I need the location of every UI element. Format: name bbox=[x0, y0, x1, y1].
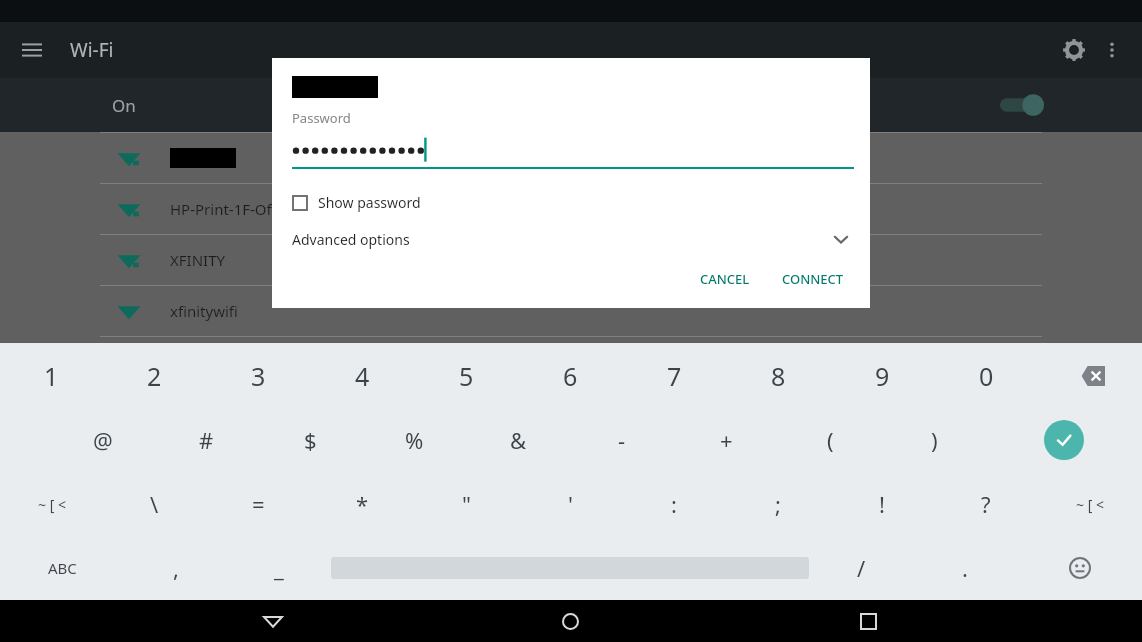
button[interactable]: = bbox=[206, 472, 310, 536]
staticText: ; bbox=[775, 489, 781, 519]
button[interactable]: \ bbox=[103, 472, 206, 536]
button[interactable]: Home bbox=[546, 600, 594, 642]
button[interactable]: Settings bbox=[1054, 30, 1094, 70]
button[interactable]: 4 bbox=[310, 343, 414, 408]
staticText: ) bbox=[931, 425, 938, 455]
staticText: ABC bbox=[48, 558, 77, 578]
staticText: @ bbox=[93, 425, 113, 455]
button[interactable]: Recents bbox=[844, 600, 892, 642]
staticText: # bbox=[199, 425, 214, 455]
button[interactable]: " bbox=[414, 472, 518, 536]
staticText: Password bbox=[292, 109, 351, 127]
button[interactable] bbox=[0, 133, 1142, 183]
staticText: \ bbox=[150, 489, 159, 519]
button[interactable]: More options bbox=[1094, 32, 1130, 68]
button[interactable]: Space bbox=[331, 556, 809, 580]
button[interactable]: Back bbox=[249, 600, 297, 642]
staticText: Show password bbox=[318, 193, 421, 212]
staticText: ~ [ < bbox=[1076, 495, 1104, 514]
staticText: 1 bbox=[44, 359, 59, 393]
button[interactable]: 3 bbox=[206, 343, 310, 408]
button[interactable]: _ bbox=[227, 536, 331, 600]
staticText: 4 bbox=[355, 359, 370, 393]
button[interactable]: : bbox=[622, 472, 726, 536]
button[interactable]: CANCEL bbox=[692, 264, 758, 294]
button[interactable]: 1 bbox=[0, 343, 103, 408]
staticText: Wi-Fi bbox=[70, 37, 114, 63]
button[interactable]: * bbox=[310, 472, 414, 536]
button[interactable]: @ bbox=[51, 408, 154, 472]
button[interactable]: Enter bbox=[986, 408, 1142, 472]
button[interactable]: ~ [ < bbox=[0, 472, 103, 536]
button[interactable]: ( bbox=[778, 408, 882, 472]
staticText: On bbox=[112, 94, 136, 117]
button[interactable]: / bbox=[809, 536, 913, 600]
button[interactable]: HP-Print-1F-Offi bbox=[0, 184, 1142, 234]
staticText: _ bbox=[274, 553, 284, 583]
staticText: , bbox=[173, 553, 179, 583]
staticText: ( bbox=[827, 425, 834, 455]
button[interactable]: $ bbox=[258, 408, 362, 472]
button[interactable]: CONNECT bbox=[774, 264, 852, 294]
button[interactable]: Backspace bbox=[1038, 343, 1142, 408]
button[interactable]: ; bbox=[726, 472, 830, 536]
staticText: 7 bbox=[667, 359, 682, 393]
button[interactable]: XFINITY bbox=[0, 235, 1142, 285]
staticText: $ bbox=[304, 425, 317, 455]
button[interactable]: + bbox=[674, 408, 778, 472]
button[interactable]: % bbox=[362, 408, 466, 472]
staticText: ~ [ < bbox=[38, 495, 66, 514]
staticText: + bbox=[720, 425, 733, 455]
staticText: % bbox=[405, 425, 424, 455]
staticText: & bbox=[510, 425, 527, 455]
staticText: : bbox=[671, 489, 677, 519]
button[interactable]: 9 bbox=[830, 343, 934, 408]
button[interactable] bbox=[1000, 93, 1044, 117]
button[interactable]: Show password bbox=[292, 193, 421, 212]
staticText: ? bbox=[981, 489, 991, 519]
staticText: XFINITY bbox=[170, 250, 225, 270]
button[interactable]: ) bbox=[882, 408, 986, 472]
staticText: = bbox=[252, 489, 265, 519]
staticText: 6 bbox=[563, 359, 578, 393]
button[interactable]: Advanced options bbox=[272, 226, 870, 252]
button[interactable]: ! bbox=[830, 472, 934, 536]
staticText: - bbox=[618, 425, 626, 455]
staticText: HP-Print-1F-Offi bbox=[170, 199, 281, 219]
staticText: " bbox=[462, 489, 471, 519]
button[interactable]: & bbox=[466, 408, 570, 472]
staticText: CONNECT bbox=[782, 270, 844, 288]
button[interactable]: 7 bbox=[622, 343, 726, 408]
button[interactable]: # bbox=[154, 408, 258, 472]
staticText: 5 bbox=[459, 359, 474, 393]
button[interactable]: ABC bbox=[0, 536, 124, 600]
staticText: 9 bbox=[875, 359, 890, 393]
staticText: ' bbox=[568, 489, 573, 519]
button[interactable]: 6 bbox=[518, 343, 622, 408]
button[interactable]: 5 bbox=[414, 343, 518, 408]
staticText: 8 bbox=[771, 359, 786, 393]
button[interactable]: 2 bbox=[103, 343, 206, 408]
staticText: ! bbox=[879, 489, 885, 519]
staticText: / bbox=[857, 553, 866, 583]
button[interactable]: - bbox=[570, 408, 674, 472]
button[interactable]: . bbox=[913, 536, 1017, 600]
button[interactable]: , bbox=[124, 536, 227, 600]
staticText: CANCEL bbox=[700, 270, 750, 288]
staticText: 3 bbox=[251, 359, 266, 393]
staticText: 0 bbox=[979, 359, 994, 393]
button[interactable]: 0 bbox=[934, 343, 1038, 408]
button[interactable]: ' bbox=[518, 472, 622, 536]
button[interactable]: 8 bbox=[726, 343, 830, 408]
button[interactable]: xfinitywifi bbox=[0, 286, 1142, 336]
staticText: * bbox=[356, 489, 369, 519]
staticText: 2 bbox=[147, 359, 162, 393]
button[interactable]: ? bbox=[934, 472, 1038, 536]
button[interactable]: Menu bbox=[18, 36, 46, 64]
staticText: . bbox=[962, 553, 968, 583]
staticText: Advanced options bbox=[292, 230, 410, 249]
button[interactable]: Emoji bbox=[1017, 536, 1142, 600]
staticText: xfinitywifi bbox=[170, 301, 238, 321]
button[interactable]: ~ [ < bbox=[1038, 472, 1142, 536]
